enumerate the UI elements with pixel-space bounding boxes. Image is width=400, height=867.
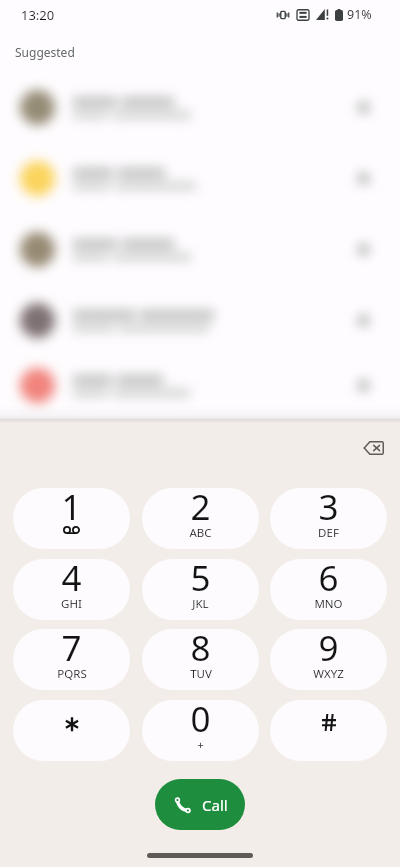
button[interactable] — [0, 285, 400, 356]
staticText: 5 — [190, 559, 211, 602]
staticText: WXYZ — [313, 666, 344, 682]
staticText: Suggested — [15, 44, 75, 60]
staticText: 1 — [61, 488, 82, 531]
staticText: 3 — [318, 488, 339, 531]
button[interactable]: 9 — [270, 629, 387, 690]
staticText: PQRS — [57, 666, 87, 682]
staticText: 9 — [318, 629, 339, 672]
button[interactable] — [0, 143, 400, 214]
staticText: Call — [202, 795, 228, 815]
staticText: GHI — [61, 596, 82, 612]
button[interactable]: 0 — [142, 700, 259, 761]
button[interactable]: 7 — [13, 629, 130, 690]
button[interactable] — [270, 700, 387, 761]
button[interactable]: 4 — [13, 559, 130, 620]
button[interactable] — [13, 700, 130, 761]
staticText: 6 — [318, 559, 339, 602]
staticText: + — [197, 737, 204, 753]
staticText: 8 — [190, 629, 211, 672]
button[interactable] — [0, 72, 400, 143]
staticText: DEF — [318, 525, 339, 541]
button[interactable]: 2 — [142, 488, 259, 549]
button[interactable] — [0, 214, 400, 285]
button[interactable]: 3 — [270, 488, 387, 549]
staticText: MNO — [314, 596, 343, 612]
staticText: 13:20 — [21, 6, 55, 24]
button[interactable]: 8 — [142, 629, 259, 690]
staticText: 7 — [61, 629, 82, 672]
staticText: 91% — [347, 6, 372, 23]
staticText: 4 — [61, 559, 82, 602]
button[interactable]: Backspace — [356, 430, 391, 465]
button[interactable]: 6 — [270, 559, 387, 620]
button[interactable] — [0, 356, 400, 415]
button[interactable]: 5 — [142, 559, 259, 620]
staticText: JKL — [192, 596, 209, 612]
staticText: ABC — [189, 525, 212, 541]
staticText: 2 — [190, 488, 211, 531]
button[interactable]: 1 — [13, 488, 130, 549]
staticText: 0 — [190, 700, 211, 743]
staticText: TUV — [190, 666, 212, 682]
button[interactable]: Call — [155, 779, 245, 830]
